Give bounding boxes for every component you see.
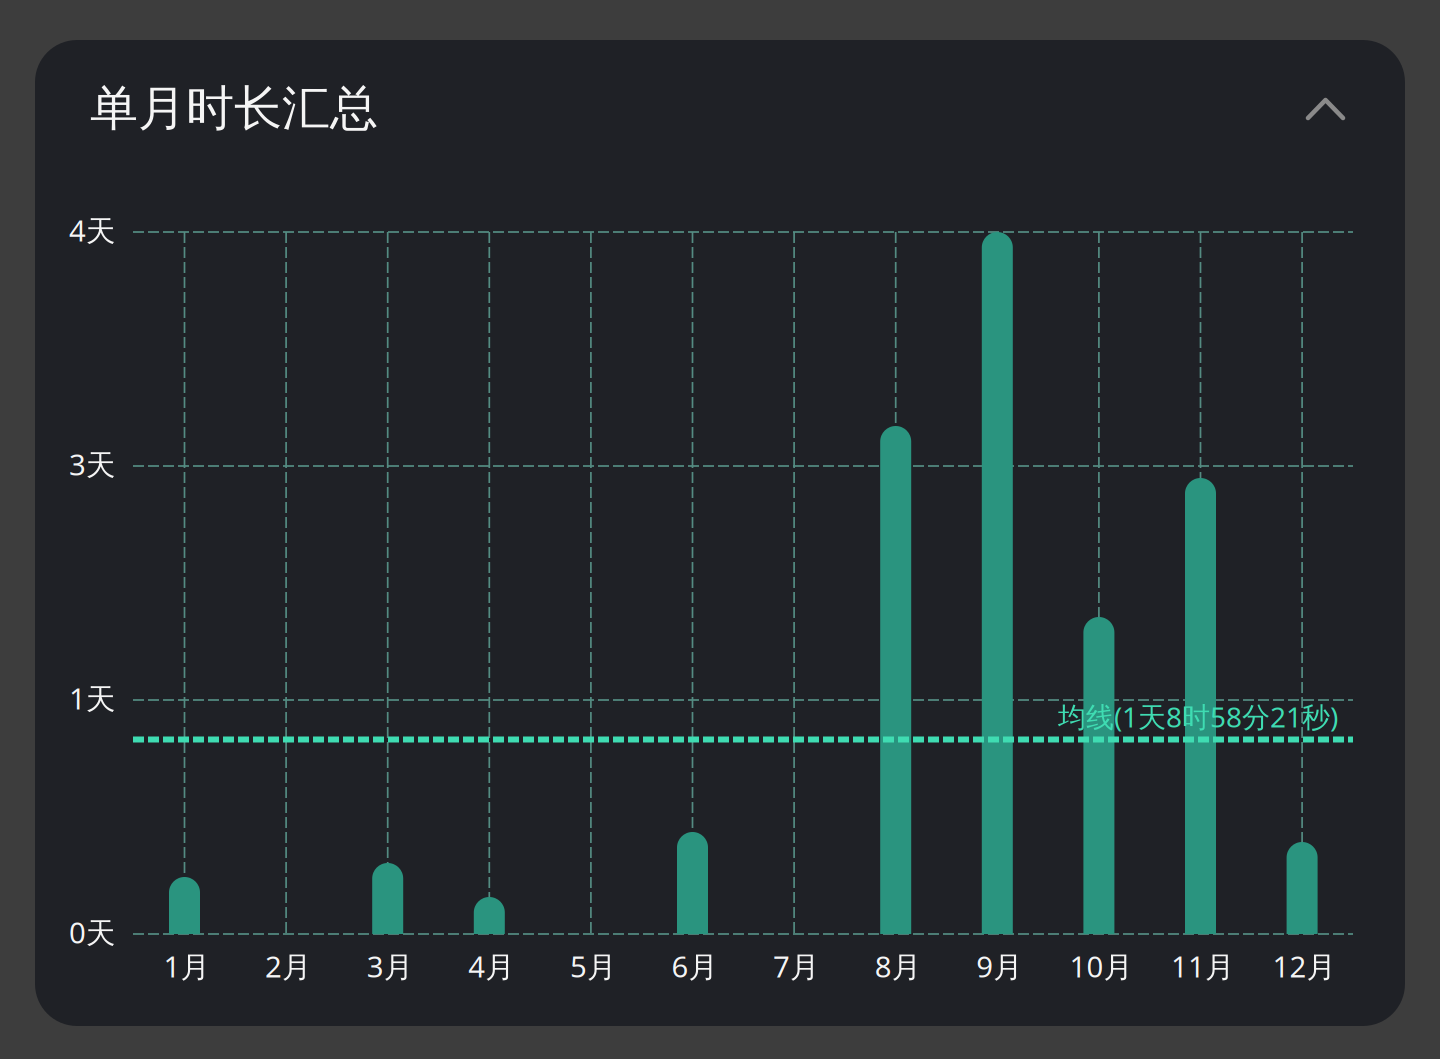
staticText: 5月 xyxy=(570,946,616,985)
staticText: 3月 xyxy=(367,946,413,985)
staticText: 4月 xyxy=(468,946,514,985)
staticText: 3天 xyxy=(69,444,115,483)
staticText: 7月 xyxy=(773,946,819,985)
staticText: 2月 xyxy=(265,946,311,985)
staticText: 10月 xyxy=(1069,946,1132,985)
staticText: 1月 xyxy=(163,946,209,985)
staticText: 11月 xyxy=(1171,946,1234,985)
staticText: 均线(1天8时58分21秒) xyxy=(1058,698,1338,735)
button[interactable]: 收起 xyxy=(1293,77,1357,141)
staticText: 9月 xyxy=(976,946,1022,985)
staticText: 1天 xyxy=(69,678,115,717)
staticText: 8月 xyxy=(875,946,921,985)
staticText: 6月 xyxy=(671,946,717,985)
staticText: 4天 xyxy=(69,210,115,249)
staticText: 0天 xyxy=(69,912,115,951)
staticText: 单月时长汇总 xyxy=(90,79,378,138)
staticText: 12月 xyxy=(1273,946,1336,985)
